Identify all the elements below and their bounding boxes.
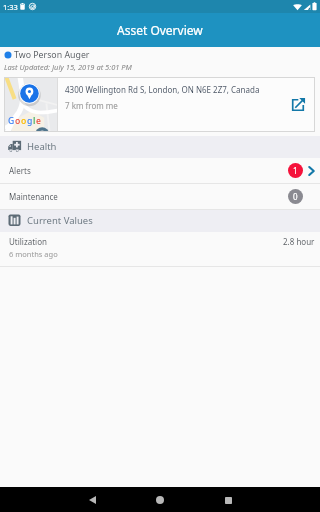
staticText: g <box>27 115 33 127</box>
button[interactable]: Open in maps <box>281 77 315 132</box>
button[interactable]: Recent apps <box>216 488 240 512</box>
button[interactable]: Maintenance <box>0 184 320 209</box>
button[interactable]: Alerts <box>0 158 320 183</box>
staticText: o <box>15 115 21 127</box>
button[interactable]: G <box>4 77 315 132</box>
staticText: Two Person Auger <box>14 49 90 61</box>
button[interactable]: Home <box>148 488 172 512</box>
staticText: o <box>21 115 27 127</box>
staticText: Health <box>27 140 57 153</box>
staticText: Maintenance <box>9 191 58 202</box>
staticText: Asset Overview <box>117 22 203 38</box>
staticText: 7 km from me <box>65 100 118 111</box>
staticText: l <box>33 115 36 127</box>
staticText: 0 <box>293 191 298 202</box>
button[interactable]: Utilization <box>0 232 320 266</box>
staticText: 2.8 hour <box>283 236 315 247</box>
staticText: Current Values <box>27 214 93 227</box>
staticText: 1:33 <box>3 2 18 12</box>
staticText: G <box>8 115 15 127</box>
staticText: Alerts <box>9 165 31 176</box>
staticText: 6 months ago <box>9 249 58 259</box>
staticText: 1 <box>293 165 298 176</box>
staticText: Last Updated: July 15, 2019 at 5:01 PM <box>4 62 132 72</box>
button[interactable]: Back <box>80 488 104 512</box>
staticText: e <box>36 115 41 127</box>
staticText: 4300 Wellington Rd S, London, ON N6E 2Z7… <box>65 84 260 95</box>
staticText: Utilization <box>9 236 47 247</box>
